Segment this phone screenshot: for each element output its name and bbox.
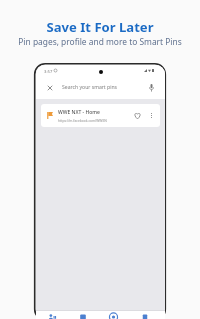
- staticText: Pin pages, profile and more to Smart Pin…: [18, 36, 182, 47]
- button[interactable]: Accounts: [36, 314, 67, 319]
- button[interactable]: Voice search: [144, 81, 158, 95]
- button[interactable]: Saved: [129, 314, 160, 319]
- button[interactable]: WWE NXT - Home: [41, 104, 160, 127]
- staticText: WWE NXT - Home: [58, 109, 100, 116]
- button[interactable]: Explore: [98, 314, 129, 319]
- staticText: Save It For Later: [46, 18, 154, 36]
- button[interactable]: Favourite: [132, 110, 143, 121]
- button[interactable]: More options: [146, 110, 157, 121]
- staticText: 3:57: [44, 69, 53, 75]
- staticText: Search your smart pins: [62, 84, 118, 91]
- staticText: https://m.facebook.com/WWEN: [58, 118, 107, 122]
- button[interactable]: Pages: [67, 314, 98, 319]
- button[interactable]: Close search: [44, 82, 55, 93]
